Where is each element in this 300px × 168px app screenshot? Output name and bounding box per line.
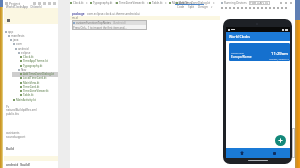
button[interactable]: Project [4, 0, 58, 6]
staticText: x [115, 1, 117, 5]
staticText: x [147, 1, 149, 5]
staticText: Typography.kt [23, 64, 43, 68]
staticText: Europe/Rome [231, 55, 252, 59]
staticText: customFunctionTopNotes [76, 21, 111, 25]
staticText: ▾ [211, 6, 213, 9]
button[interactable]: MainView.kt [20, 81, 40, 85]
staticText: app [8, 30, 14, 34]
button[interactable]: Time zones [258, 148, 290, 158]
staticText: Project [9, 1, 21, 6]
staticText: m-d [72, 16, 78, 20]
button[interactable]: com [13, 42, 22, 46]
button[interactable]: Clock.kt [20, 55, 34, 59]
staticText: x [165, 1, 167, 5]
staticText: assistants [6, 131, 20, 135]
staticText: public.kts [6, 112, 19, 116]
button[interactable]: Design [198, 5, 208, 9]
staticText: soundsupport [6, 135, 26, 139]
staticText: current time [231, 52, 244, 55]
staticText: Build [6, 147, 15, 151]
staticText: x [191, 1, 193, 5]
button[interactable]: TimeZoneViewer.kt [116, 1, 149, 5]
button[interactable]: Code [177, 5, 185, 9]
button[interactable]: customFunctionTopNotes [72, 20, 147, 25]
staticText: Press Ctrl+. 1 to import the first item … [73, 26, 127, 30]
staticText: x [213, 1, 215, 5]
staticText: eclipse [21, 51, 31, 55]
staticText: manifests [11, 34, 25, 38]
button[interactable]: TimeCard.kt [20, 85, 40, 89]
staticText: Running Devices [224, 1, 247, 5]
button[interactable]: Home [226, 148, 258, 158]
staticText: Split [188, 5, 195, 9]
button[interactable]: app [5, 30, 14, 34]
button[interactable]: Add time zone [275, 135, 286, 146]
button[interactable]: Project tool window [0, 0, 3, 168]
button[interactable]: Clock.kt [70, 1, 88, 5]
button[interactable]: Table.kt [149, 1, 167, 5]
staticText: WorldClocksApp D:/work/WorldClocksApp [6, 5, 60, 9]
staticText: World Clocks [229, 34, 250, 39]
staticText: com [16, 42, 22, 46]
staticText: naturalBuildpdRec.xml [6, 108, 37, 112]
staticText: java [13, 38, 19, 42]
staticText: Table.kt [23, 93, 34, 97]
staticText: MainView.kt [23, 81, 40, 85]
staticText: AddTimeZoneDialog.kt [23, 72, 55, 76]
button[interactable]: AddTimeZoneDialog.kt [20, 72, 55, 76]
staticText: Ps [6, 105, 10, 109]
staticText: LocalTimeCard.kt [23, 76, 47, 80]
button[interactable]: AddTimeZoneDialog.kt [176, 1, 215, 5]
button[interactable]: MainView.kt [169, 1, 193, 5]
staticText: TimeZoneViewer.kt [119, 1, 145, 5]
button[interactable]: LocalTimeCard.kt [20, 76, 47, 80]
staticText: Code [177, 5, 185, 9]
staticText: MainView.kt [172, 1, 189, 5]
button[interactable]: Typography.kt [90, 1, 117, 5]
button[interactable]: Pixel 4 API 30 [250, 1, 269, 5]
staticText: android [18, 47, 29, 51]
button[interactable]: eclipse [18, 51, 31, 55]
button[interactable]: Nav [18, 68, 27, 72]
button[interactable]: Typography.kt [20, 64, 43, 68]
staticText: Typography.kt [93, 1, 113, 5]
button[interactable]: Running Devices tool window [295, 0, 300, 168]
staticText: x [86, 1, 88, 5]
staticText: package [72, 12, 85, 16]
button[interactable]: android [15, 47, 29, 51]
button[interactable]: current time [229, 43, 290, 61]
button[interactable]: Running Devices [221, 1, 247, 5]
button[interactable]: MainActivity.kt [13, 98, 36, 102]
staticText: Design [198, 5, 208, 9]
button[interactable]: TimeZoneViewer.kt [20, 89, 49, 93]
button[interactable]: manifests [8, 34, 25, 38]
staticText: Monday, August 14 [269, 58, 289, 61]
staticText: com.eclipse.clock.ui.theme.android.ui [87, 12, 140, 16]
button[interactable]: TimeAppTheme.kt [20, 59, 48, 63]
button[interactable]: Table.kt [20, 93, 34, 97]
button[interactable]: java [10, 38, 19, 42]
staticText: Clock.kt [73, 1, 84, 5]
staticText: Clock.kt [23, 55, 34, 59]
button[interactable]: Split [188, 5, 195, 9]
